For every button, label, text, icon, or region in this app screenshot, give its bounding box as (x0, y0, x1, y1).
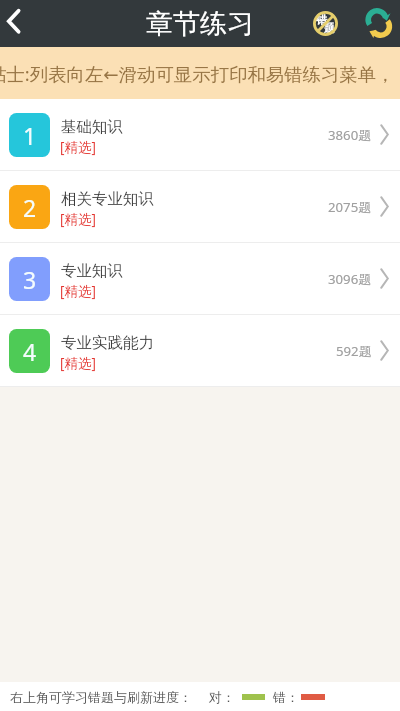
staticText: 专业知识 (61, 261, 123, 281)
button[interactable]: 1 (0, 99, 400, 170)
staticText: 题 (324, 21, 335, 35)
button[interactable]: 2 (0, 171, 400, 242)
staticText: 3 (23, 264, 37, 295)
button[interactable]: 错题 (305, 3, 345, 43)
button[interactable]: 3 (0, 243, 400, 314)
button[interactable]: 刷新 (359, 3, 399, 43)
staticText: 2075题 (328, 198, 372, 216)
staticText: 对： (209, 689, 235, 705)
staticText: 基础知识 (61, 117, 123, 137)
staticText: 错 (316, 13, 327, 27)
staticText: 3860题 (328, 126, 372, 144)
button[interactable]: Back (0, 0, 40, 47)
staticText: 错： (273, 689, 299, 705)
staticText: 3096题 (328, 270, 372, 288)
staticText: [精选] (60, 354, 96, 372)
staticText: 专业实践能力 (61, 333, 154, 353)
staticText: 贴士:列表向左←滑动可显示打印和易错练习菜单，提 (0, 61, 388, 86)
staticText: 4 (23, 336, 37, 367)
staticText: [精选] (60, 138, 96, 156)
staticText: [精选] (60, 282, 96, 300)
staticText: 章节练习 (146, 7, 254, 41)
staticText: 右上角可学习错题与刷新进度： (10, 689, 192, 705)
staticText: 1 (23, 120, 37, 151)
staticText: 592题 (336, 342, 372, 360)
staticText: [精选] (60, 210, 96, 228)
staticText: 2 (23, 192, 37, 223)
button[interactable]: 4 (0, 315, 400, 386)
staticText: 相关专业知识 (61, 189, 154, 209)
